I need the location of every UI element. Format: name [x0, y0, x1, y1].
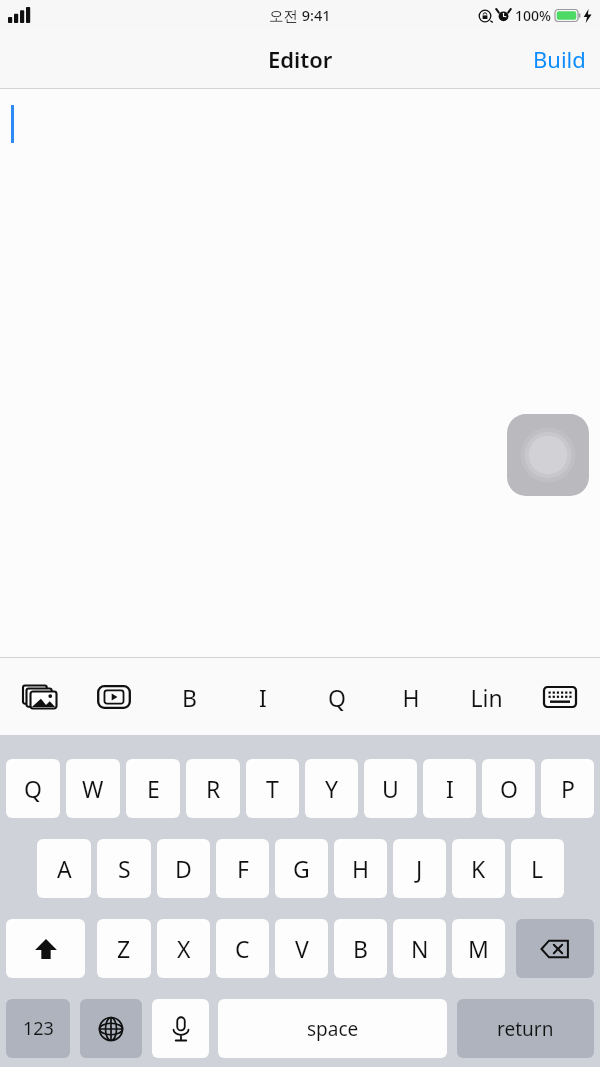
button[interactable]: F — [216, 839, 269, 898]
staticText: Editor — [268, 44, 333, 74]
staticText: Z — [117, 933, 131, 964]
button[interactable]: B — [165, 673, 213, 721]
staticText: E — [147, 773, 160, 804]
staticText: Q — [24, 773, 42, 804]
button[interactable]: Hide keyboard — [536, 673, 584, 721]
staticText: B — [182, 682, 197, 713]
staticText: X — [177, 933, 191, 964]
staticText: space — [307, 1016, 359, 1042]
button[interactable]: Backspace — [516, 919, 594, 978]
staticText: 오전 9:41 — [269, 5, 331, 25]
staticText: Q — [328, 682, 346, 713]
button[interactable]: Z — [97, 919, 151, 978]
button[interactable]: Y — [305, 759, 358, 818]
button[interactable]: V — [275, 919, 328, 978]
staticText: N — [411, 933, 429, 964]
button[interactable]: T — [246, 759, 299, 818]
staticText: L — [531, 853, 544, 884]
staticText: 123 — [23, 1016, 54, 1041]
staticText: M — [468, 933, 489, 964]
button[interactable]: Shift — [6, 919, 85, 978]
button[interactable]: Change language — [80, 999, 142, 1058]
staticText: T — [266, 773, 279, 804]
staticText: return — [497, 1016, 554, 1042]
button[interactable]: 123 — [6, 999, 70, 1058]
staticText: P — [561, 773, 575, 804]
button[interactable]: M — [452, 919, 505, 978]
staticText: I — [259, 682, 267, 713]
button[interactable]: N — [393, 919, 446, 978]
staticText: Y — [325, 773, 339, 804]
button[interactable]: P — [541, 759, 594, 818]
button[interactable]: H — [387, 673, 435, 721]
button[interactable]: Build — [519, 34, 600, 84]
button[interactable]: X — [157, 919, 210, 978]
staticText: B — [353, 933, 368, 964]
staticText: I — [446, 773, 454, 804]
button[interactable]: Dictate — [152, 999, 209, 1058]
button[interactable]: L — [511, 839, 564, 898]
staticText: 100% — [515, 6, 551, 25]
staticText: H — [352, 853, 370, 884]
button[interactable]: J — [393, 839, 446, 898]
staticText: V — [295, 933, 309, 964]
button[interactable]: I — [239, 673, 287, 721]
button[interactable]: C — [216, 919, 269, 978]
button[interactable]: R — [186, 759, 240, 818]
button[interactable]: O — [482, 759, 535, 818]
staticText: O — [500, 773, 518, 804]
staticText: W — [82, 773, 104, 804]
staticText: Lin — [470, 682, 503, 713]
staticText: F — [237, 853, 249, 884]
button[interactable]: A — [37, 839, 91, 898]
button[interactable]: I — [423, 759, 476, 818]
button[interactable]: return — [457, 999, 594, 1058]
staticText: S — [118, 853, 131, 884]
button[interactable]: Lin — [462, 673, 510, 721]
button[interactable]: G — [275, 839, 328, 898]
button[interactable]: Insert image — [16, 673, 64, 721]
staticText: H — [402, 682, 420, 713]
staticText: A — [57, 853, 72, 884]
button[interactable]: E — [126, 759, 180, 818]
button[interactable]: B — [334, 919, 387, 978]
staticText: C — [235, 933, 250, 964]
button[interactable]: Q — [313, 673, 361, 721]
staticText: Build — [533, 44, 586, 74]
button[interactable]: W — [66, 759, 120, 818]
button[interactable]: S — [97, 839, 151, 898]
button[interactable]: K — [452, 839, 505, 898]
button[interactable]: Insert video — [90, 673, 138, 721]
button[interactable]: space — [218, 999, 447, 1058]
staticText: U — [382, 773, 399, 804]
button[interactable]: D — [157, 839, 210, 898]
staticText: K — [471, 853, 486, 884]
staticText: G — [293, 853, 310, 884]
button[interactable]: Record — [507, 414, 589, 496]
button[interactable]: Q — [6, 759, 60, 818]
staticText: D — [175, 853, 192, 884]
staticText: R — [206, 773, 221, 804]
staticText: J — [416, 853, 423, 884]
button[interactable]: H — [334, 839, 387, 898]
button[interactable]: U — [364, 759, 417, 818]
